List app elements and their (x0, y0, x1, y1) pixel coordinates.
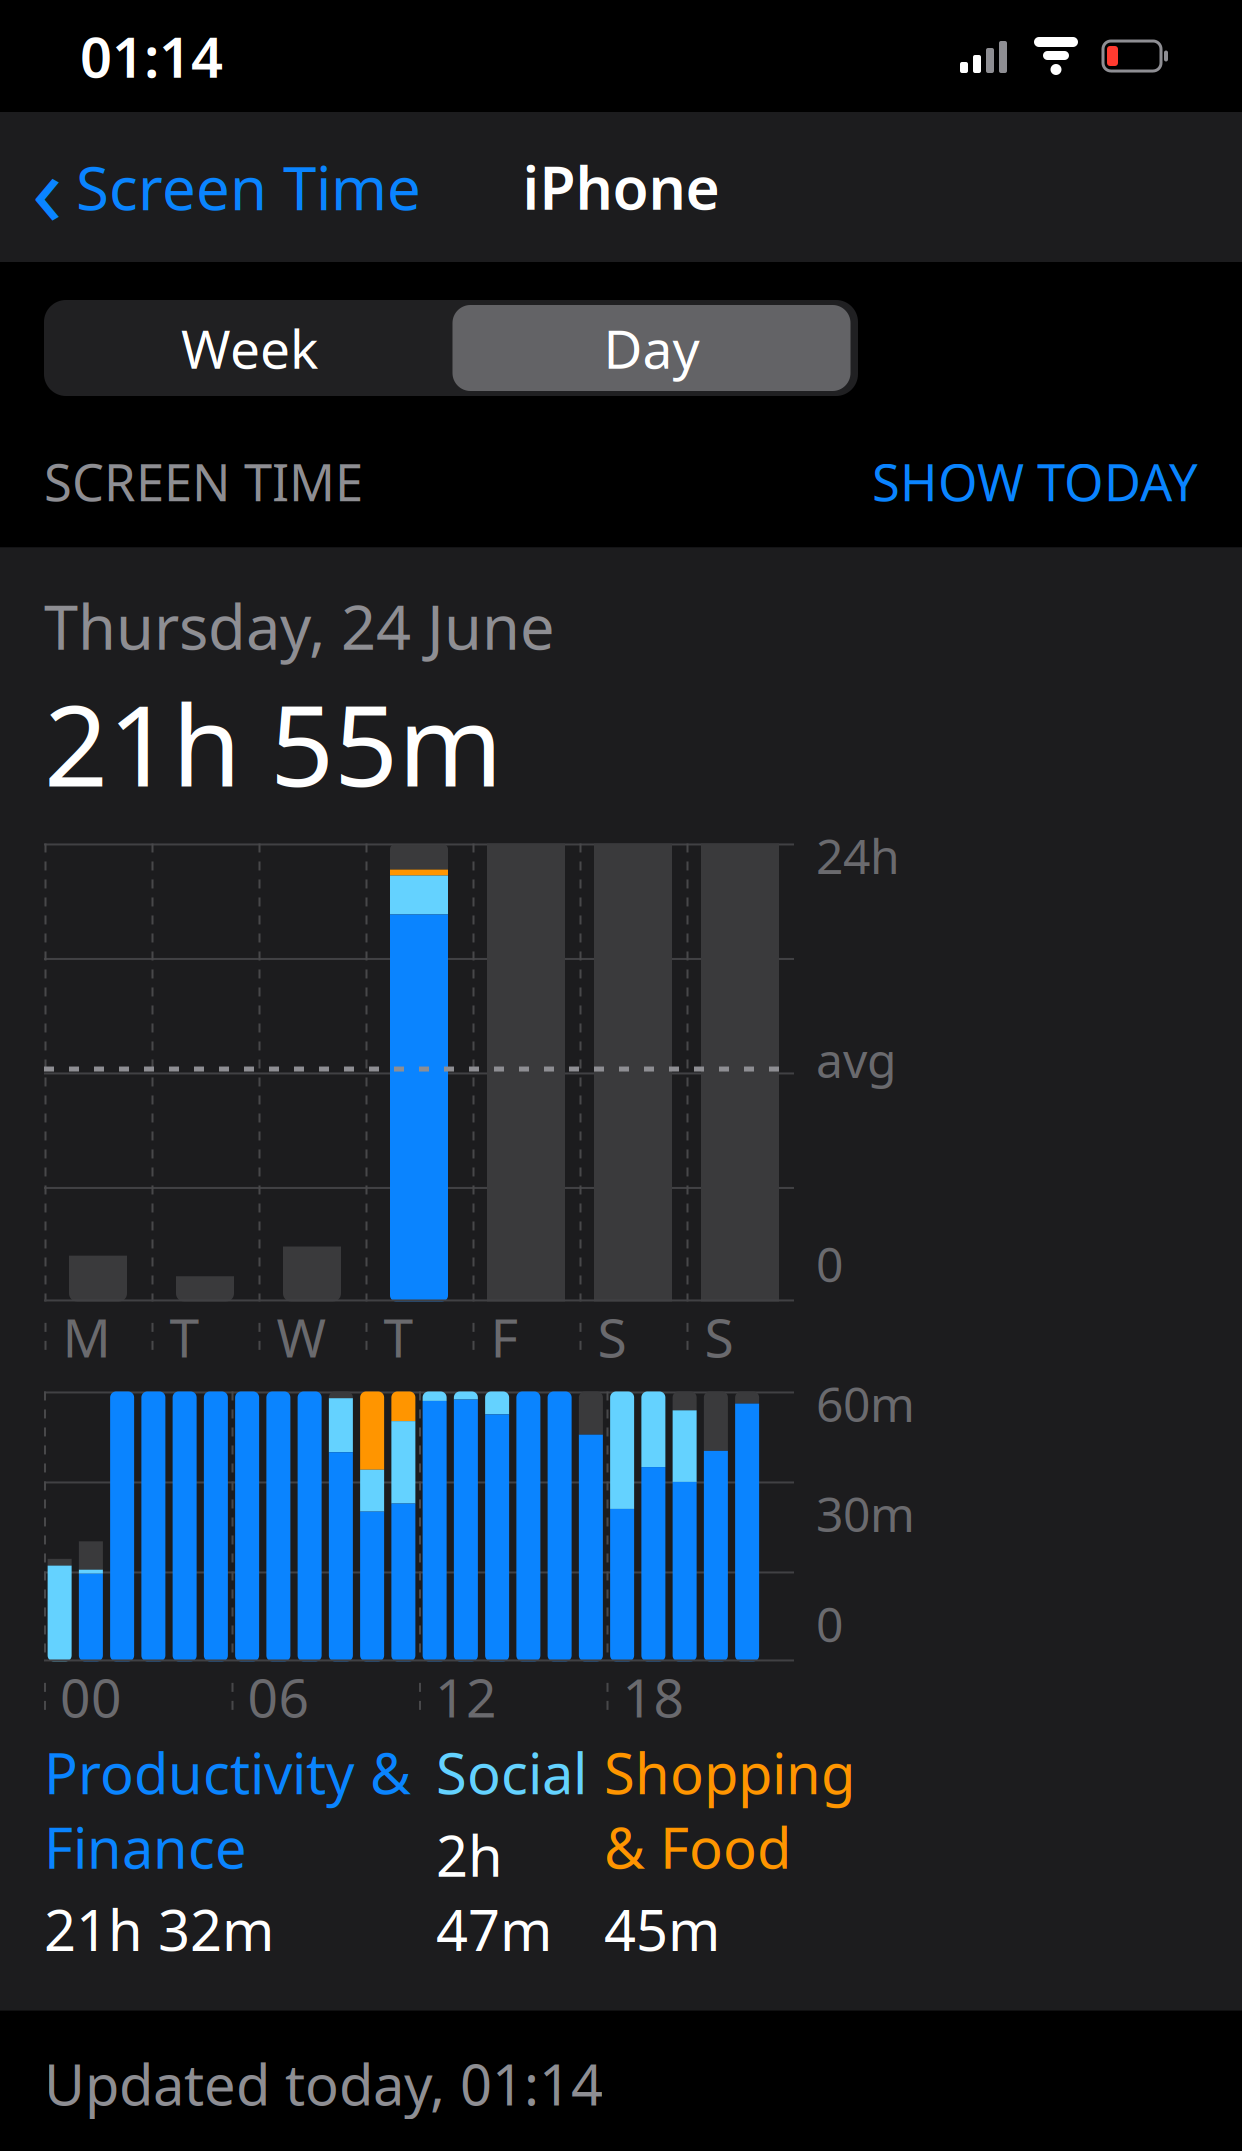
button[interactable]: Week (46, 300, 452, 396)
staticText: S (597, 1301, 626, 1372)
staticText: iPhone (522, 148, 719, 226)
staticText: Shopping & Food (604, 1735, 855, 1884)
staticText: 21h 32m (44, 1892, 274, 1967)
button[interactable]: Day (452, 305, 850, 391)
staticText: 2h 47m (436, 1818, 552, 1966)
staticText: 12 (435, 1661, 497, 1732)
staticText: 01:14 (80, 19, 223, 93)
staticText: Social (436, 1735, 587, 1810)
staticText: S (704, 1301, 733, 1372)
staticText: Day (603, 313, 699, 383)
staticText: 0 (816, 1232, 843, 1295)
staticText: 06 (247, 1661, 309, 1732)
staticText: 18 (622, 1661, 684, 1732)
staticText: 00 (60, 1661, 122, 1732)
staticText: T (169, 1301, 199, 1372)
button[interactable]: ‹ (0, 131, 421, 243)
staticText: 60m (816, 1371, 915, 1435)
button[interactable]: SHOW TODAY (872, 448, 1198, 515)
staticText: Productivity & Finance (44, 1735, 411, 1884)
staticText: W (276, 1301, 326, 1372)
staticText: Screen Time (76, 147, 421, 227)
staticText: 0 (816, 1592, 843, 1655)
staticText: 30m (816, 1482, 915, 1545)
staticText: ‹ (31, 120, 62, 254)
staticText: 45m (604, 1892, 720, 1967)
staticText: Updated today, 01:14 (44, 2047, 603, 2121)
staticText: 21h 55m (44, 669, 503, 817)
staticText: Week (181, 313, 318, 383)
staticText: avg (816, 1028, 897, 1091)
staticText: Thursday, 24 June (44, 585, 555, 667)
staticText: SHOW TODAY (872, 448, 1198, 515)
staticText: T (383, 1301, 413, 1372)
staticText: 24h (816, 823, 900, 887)
staticText: SCREEN TIME (44, 448, 363, 515)
staticText: M (62, 1301, 110, 1372)
staticText: F (490, 1301, 518, 1372)
